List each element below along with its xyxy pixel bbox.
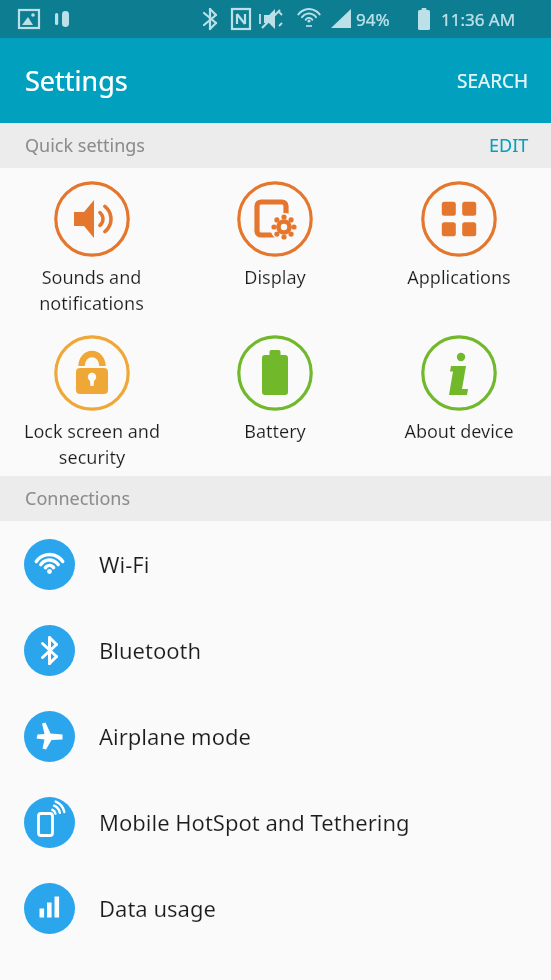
staticText: 94% [356, 8, 390, 31]
staticText: Quick settings [25, 133, 145, 158]
staticText: Connections [25, 486, 131, 511]
button[interactable]: Battery [183, 322, 367, 450]
button[interactable]: Sounds and notifications [0, 168, 183, 322]
button[interactable]: SEARCH [435, 52, 551, 110]
staticText: SEARCH [457, 68, 529, 94]
button[interactable]: Display [183, 168, 367, 296]
button[interactable]: Mobile HotSpot and Tethering [0, 779, 551, 865]
button[interactable]: About device [367, 322, 551, 450]
staticText: Mobile HotSpot and Tethering [99, 807, 410, 837]
staticText: Bluetooth [99, 635, 202, 665]
staticText: Settings [25, 62, 128, 99]
staticText: 11:36 AM [441, 8, 516, 31]
button[interactable]: Data usage [0, 865, 551, 951]
button[interactable]: Lock screen and security [0, 322, 183, 476]
button[interactable]: Applications [367, 168, 551, 296]
button[interactable]: EDIT [467, 123, 551, 168]
staticText: Applications [407, 265, 511, 290]
other: Data usage [24, 883, 75, 934]
other: Wi-Fi [24, 539, 75, 590]
staticText: Airplane mode [99, 721, 251, 751]
button[interactable]: Wi-Fi [0, 521, 551, 607]
staticText: Data usage [99, 893, 216, 923]
button[interactable]: Bluetooth [0, 607, 551, 693]
staticText: Battery [244, 419, 306, 444]
other: Mobile HotSpot and Tethering [24, 797, 75, 848]
staticText: Display [244, 265, 306, 290]
button[interactable]: Airplane mode [0, 693, 551, 779]
staticText: Sounds and notifications [39, 265, 144, 316]
staticText: About device [404, 419, 514, 444]
staticText: EDIT [489, 133, 529, 158]
staticText: Lock screen and security [24, 419, 160, 470]
staticText: Wi-Fi [99, 549, 150, 579]
other: Airplane mode [24, 711, 75, 762]
other: Bluetooth [24, 625, 75, 676]
